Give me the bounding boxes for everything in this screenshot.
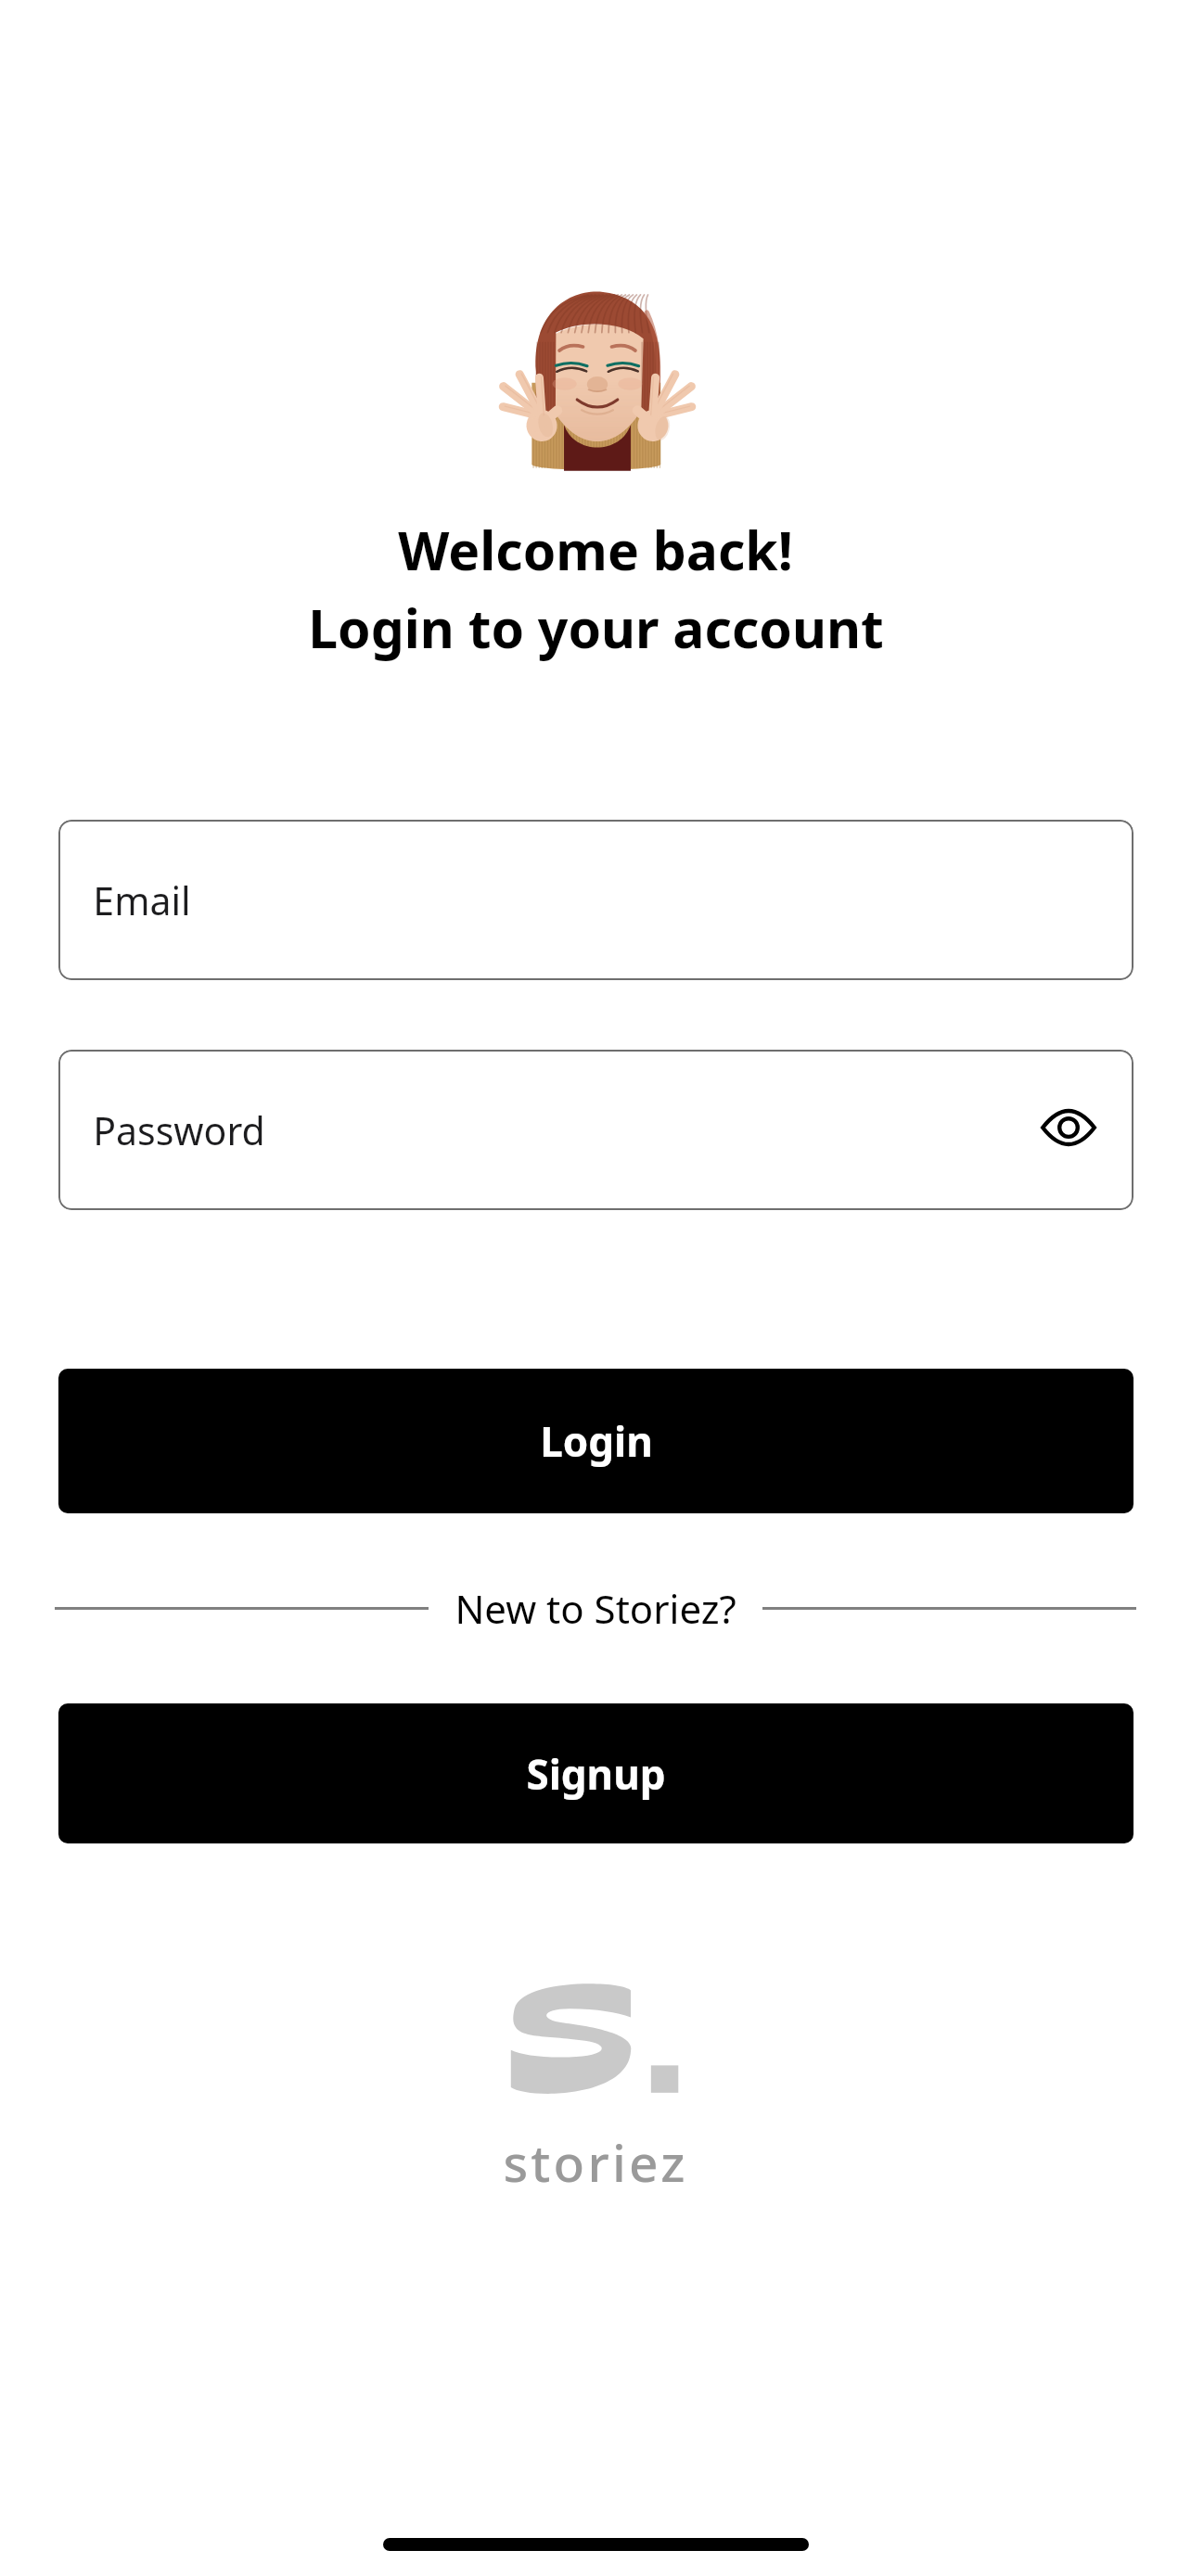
staticText: Password: [93, 1104, 265, 1156]
staticText: Welcome back!: [398, 514, 793, 586]
staticText: Login: [540, 1413, 653, 1469]
button[interactable]: Password: [58, 1050, 1133, 1210]
staticText: storiez: [503, 2127, 688, 2197]
staticText: Signup: [526, 1746, 666, 1802]
button[interactable]: Login: [58, 1369, 1133, 1513]
staticText: Email: [93, 874, 191, 926]
staticText: New to Storiez?: [455, 1582, 736, 1635]
staticText: Login to your account: [308, 592, 884, 664]
button[interactable]: Signup: [58, 1703, 1133, 1843]
button[interactable]: Show password: [1020, 1079, 1117, 1176]
button[interactable]: Email: [58, 820, 1133, 980]
